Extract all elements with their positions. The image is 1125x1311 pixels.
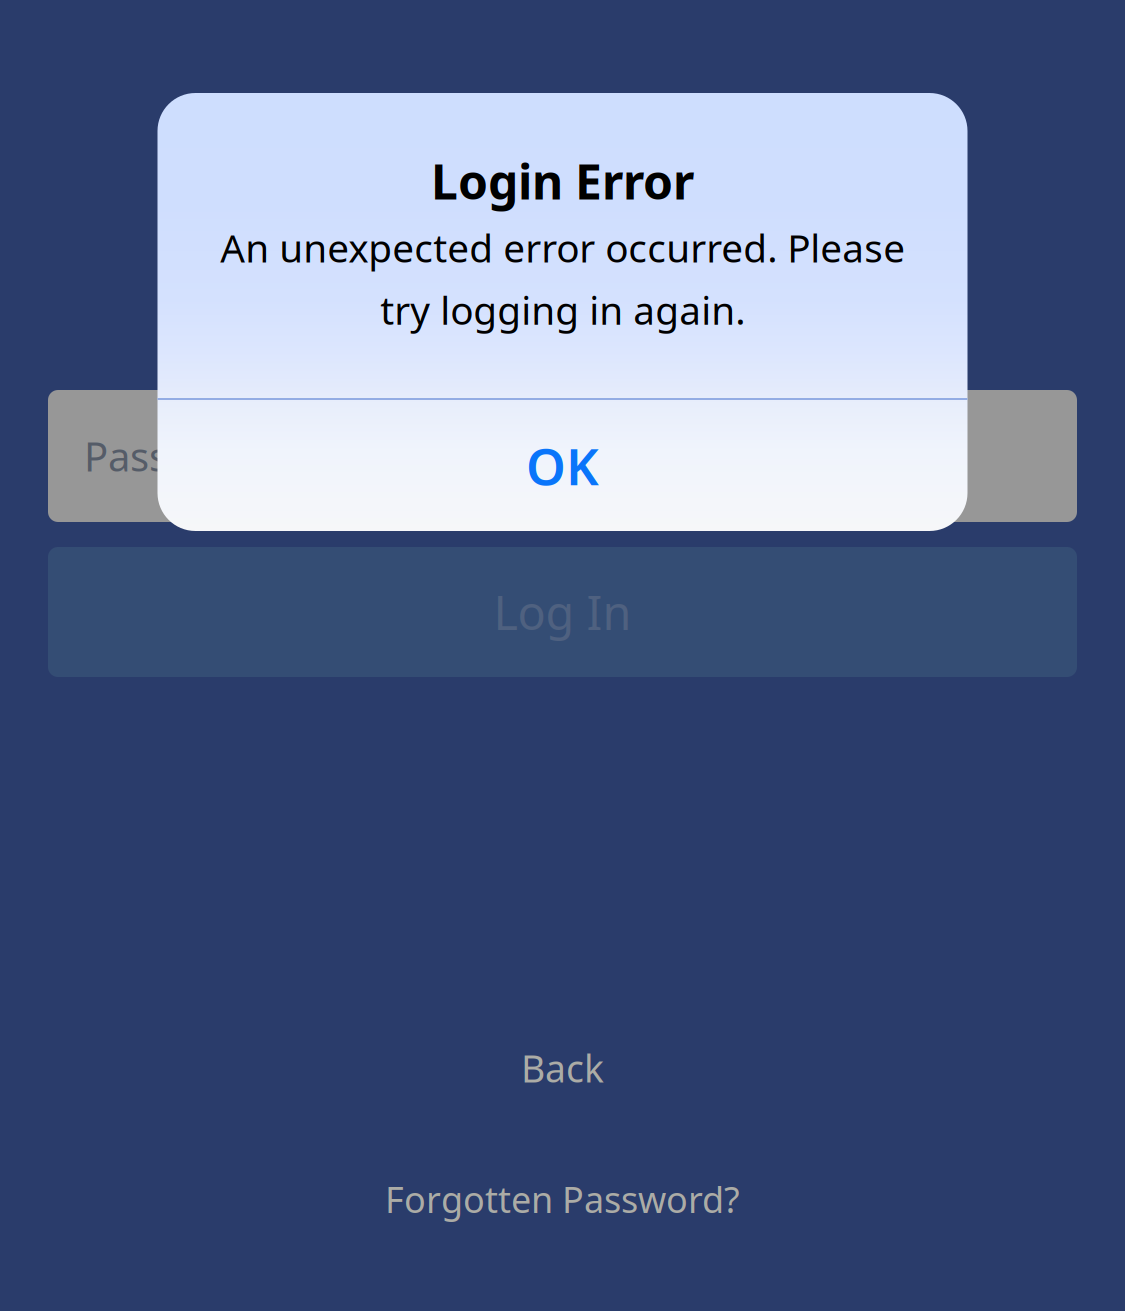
staticText: Log In (493, 581, 631, 643)
staticText: Forgotten Password? (385, 1175, 740, 1223)
staticText: An unexpected error occurred. Please try… (220, 222, 905, 335)
staticText: OK (526, 432, 599, 499)
button[interactable]: OK (157, 400, 967, 531)
button[interactable]: Back (48, 1043, 1077, 1093)
staticText: Password (84, 429, 264, 482)
staticText: Back (521, 1043, 604, 1093)
staticText: Login Error (431, 149, 694, 213)
button[interactable]: Forgotten Password? (48, 1174, 1077, 1224)
